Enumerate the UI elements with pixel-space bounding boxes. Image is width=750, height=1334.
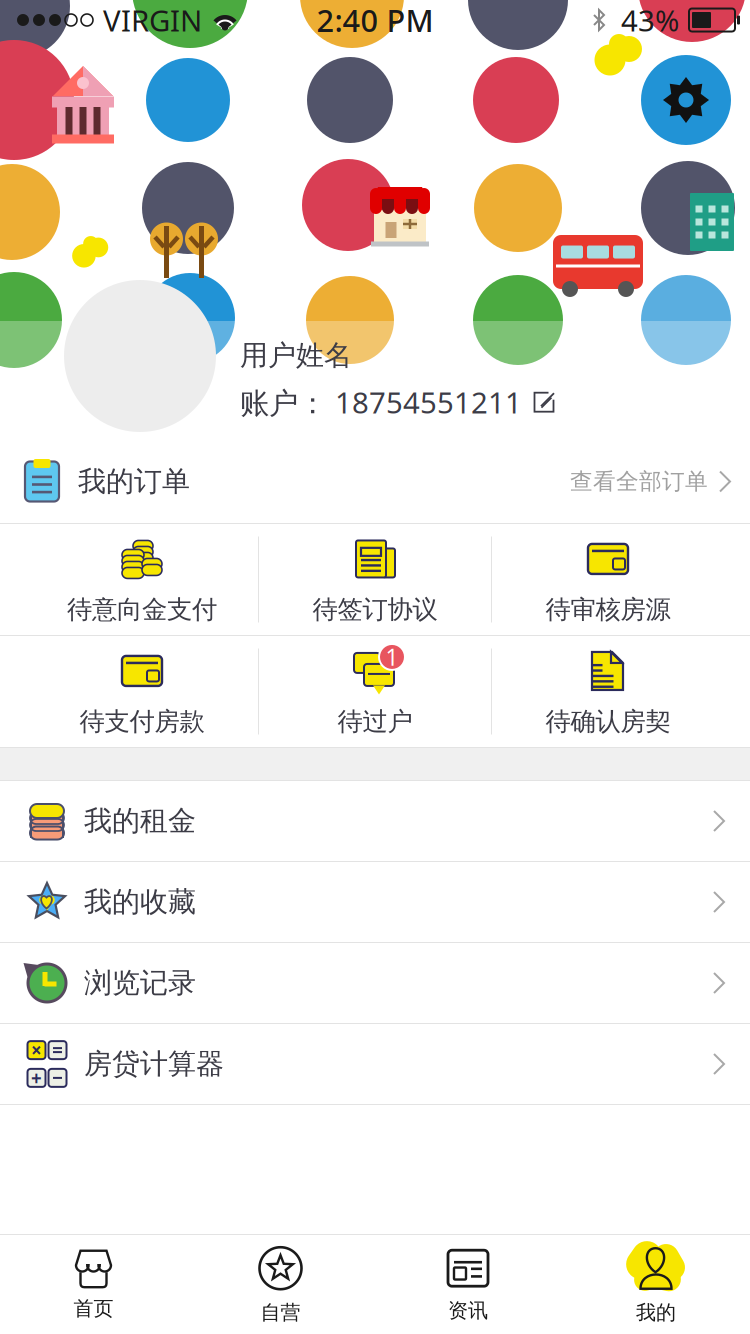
staticText: 2:40 PM: [316, 0, 433, 40]
staticText: 我的订单: [78, 464, 190, 499]
staticText: 自营: [260, 1300, 300, 1325]
staticText: 我的: [636, 1300, 676, 1325]
button[interactable]: 首页: [0, 1235, 187, 1334]
staticText: VIRGIN: [103, 0, 202, 39]
staticText: +: [31, 1065, 42, 1090]
staticText: 待签订协议: [312, 594, 437, 625]
staticText: 我的租金: [84, 804, 196, 838]
button[interactable]: 我的收藏: [0, 862, 750, 942]
button[interactable]: 待签订协议: [259, 523, 491, 635]
button[interactable]: 我的租金: [0, 781, 750, 861]
button[interactable]: 待审核房源: [492, 523, 724, 635]
staticText: 房贷计算器: [84, 1047, 224, 1081]
button[interactable]: 待意向金支付: [26, 523, 258, 635]
button[interactable]: 资讯: [374, 1235, 562, 1334]
staticText: 待过户: [337, 706, 412, 737]
staticText: 首页: [73, 1296, 113, 1321]
staticText: 待确认房契: [545, 706, 670, 737]
button[interactable]: 浏览记录: [0, 943, 750, 1023]
button[interactable]: 待确认房契: [492, 635, 724, 747]
staticText: 43%: [621, 0, 679, 39]
staticText: 我的收藏: [84, 885, 196, 919]
staticText: 账户： 18754551211: [240, 383, 522, 422]
staticText: 待支付房款: [79, 706, 204, 737]
button[interactable]: 我的: [562, 1235, 750, 1334]
staticText: 浏览记录: [84, 966, 196, 1000]
staticText: 待审核房源: [545, 594, 670, 625]
staticText: 1: [385, 642, 398, 672]
button[interactable]: 1: [259, 635, 491, 747]
button[interactable]: 待支付房款: [26, 635, 258, 747]
staticText: ×: [31, 1038, 42, 1062]
staticText: 待意向金支付: [67, 594, 217, 625]
staticText: 查看全部订单: [570, 468, 708, 495]
staticText: 资讯: [448, 1298, 488, 1323]
button[interactable]: 查看全部订单: [570, 468, 732, 495]
button[interactable]: ×: [0, 1024, 750, 1104]
button[interactable]: 自营: [187, 1235, 374, 1334]
staticText: 用户姓名: [240, 338, 352, 373]
